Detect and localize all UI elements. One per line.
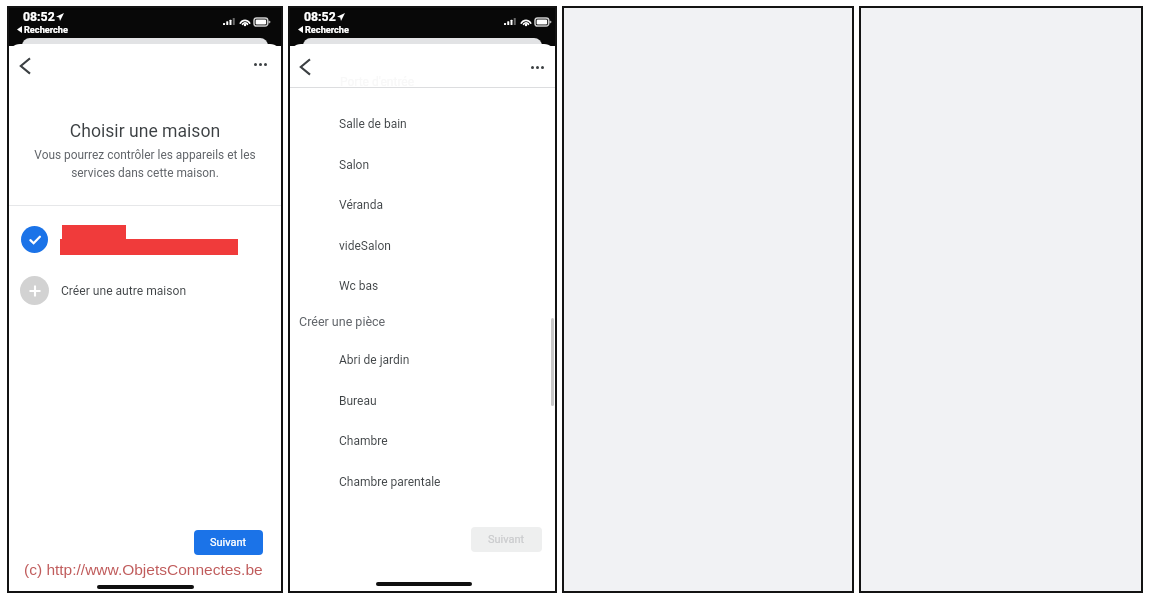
staticText: Abri de jardin <box>339 353 410 367</box>
staticText: Salon <box>339 158 370 172</box>
button[interactable]: Salle de bain <box>290 104 555 144</box>
button[interactable]: Back <box>290 52 320 82</box>
button[interactable]: More options <box>246 50 274 78</box>
staticText: Suivant <box>488 533 525 546</box>
button[interactable]: Wc bas <box>290 266 555 306</box>
button[interactable]: Suivant <box>471 527 542 552</box>
staticText: Porte d'entrée <box>340 75 415 89</box>
button[interactable]: Suivant <box>194 530 263 555</box>
button[interactable]: videSalon <box>290 226 555 266</box>
button[interactable]: Back <box>10 51 40 81</box>
staticText: Chambre <box>339 434 388 448</box>
staticText: Créer une pièce <box>299 314 386 329</box>
staticText: 08:52 <box>23 10 55 24</box>
staticText: Véranda <box>339 198 384 212</box>
button[interactable]: Bureau <box>290 381 555 421</box>
staticText: Recherche <box>305 24 349 35</box>
button[interactable]: Créer une autre maison <box>9 268 281 314</box>
staticText: Choisir une maison <box>9 121 281 142</box>
staticText: Chambre parentale <box>339 475 441 489</box>
staticText: Salle de bain <box>339 117 407 131</box>
staticText: Vous pourrez contrôler les appareils et … <box>9 148 281 180</box>
staticText: Créer une autre maison <box>61 284 187 298</box>
staticText: 08:52 <box>304 10 336 24</box>
staticText: Recherche <box>24 24 68 35</box>
button[interactable]: Véranda <box>290 185 555 225</box>
button[interactable]: Chambre <box>290 421 555 461</box>
staticText: Suivant <box>210 536 247 549</box>
button[interactable]: More options <box>523 53 551 81</box>
staticText: (c) http://www.ObjetsConnectes.be <box>24 561 263 578</box>
button[interactable]: Abri de jardin <box>290 340 555 380</box>
button[interactable]: Salon <box>290 145 555 185</box>
button[interactable] <box>9 216 281 263</box>
button[interactable]: Chambre parentale <box>290 462 555 502</box>
staticText: Bureau <box>339 394 377 408</box>
staticText: Wc bas <box>339 279 379 293</box>
staticText: videSalon <box>339 239 391 253</box>
